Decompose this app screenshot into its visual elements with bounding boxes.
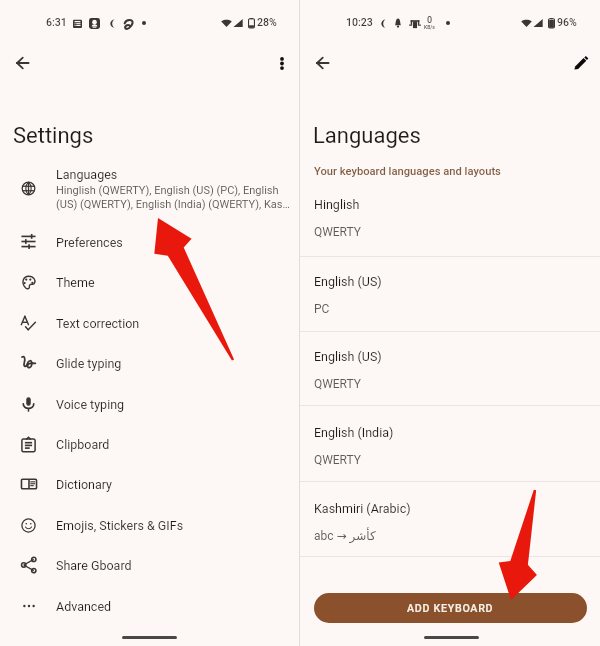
staticText: Preferences [56,235,123,250]
staticText: 96% [557,16,577,28]
button[interactable]: Back [308,49,336,77]
button[interactable]: Languages [0,161,299,217]
button[interactable]: Voice typing [0,384,299,424]
button[interactable]: Edit [566,49,594,77]
staticText: Text correction [56,316,140,331]
staticText: Settings [13,123,94,149]
button[interactable]: Preferences [0,222,299,262]
staticText: 28% [257,16,277,28]
button[interactable]: Advanced [0,586,299,626]
button[interactable]: English (US) [300,266,600,332]
staticText: Clipboard [56,437,110,452]
staticText: ADD KEYBOARD [407,602,494,615]
staticText: Advanced [56,599,112,614]
staticText: Hinglish (QWERTY), English (US) (PC), En… [56,184,290,211]
button[interactable]: ADD KEYBOARD [314,593,587,623]
staticText: KB/s [424,24,435,30]
button[interactable]: Clipboard [0,424,299,464]
staticText: Voice typing [56,397,125,412]
button[interactable]: Theme [0,262,299,302]
staticText: PC [314,302,330,316]
staticText: Dictionary [56,477,113,492]
button[interactable]: Text correction [0,303,299,343]
staticText: English (India) [314,425,394,440]
staticText: Theme [56,275,95,290]
button[interactable]: Kashmiri (Arabic) [300,493,600,559]
staticText: QWERTY [314,225,361,239]
staticText: Kashmiri (Arabic) [314,501,411,516]
button[interactable]: Hinglish [300,189,600,255]
staticText: English (US) [314,349,382,364]
staticText: Emojis, Stickers & GIFs [56,518,184,533]
staticText: Glide typing [56,356,122,371]
button[interactable]: Glide typing [0,343,299,383]
staticText: Share Gboard [56,558,132,573]
staticText: English (US) [314,274,382,289]
staticText: Languages [313,123,421,149]
staticText: Your keyboard languages and layouts [314,165,501,178]
staticText: QWERTY [314,377,361,391]
button[interactable]: Emojis, Stickers & GIFs [0,505,299,545]
staticText: 10:23 [346,16,373,28]
staticText: 6:31 [46,16,67,28]
button[interactable]: More options [268,49,296,77]
staticText: Languages [56,167,118,182]
button[interactable]: English (India) [300,417,600,483]
staticText: abc → كأشر [314,529,376,543]
button[interactable]: Share Gboard [0,545,299,585]
button[interactable]: English (US) [300,341,600,407]
staticText: 0 [427,15,433,26]
button[interactable]: Back [8,49,36,77]
staticText: QWERTY [314,453,361,467]
staticText: Hinglish [314,197,360,212]
button[interactable]: Dictionary [0,464,299,504]
